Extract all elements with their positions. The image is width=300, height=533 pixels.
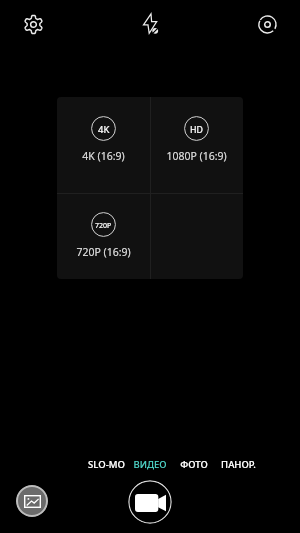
staticText: 720P xyxy=(95,221,112,231)
staticText: 1080P (16:9) xyxy=(166,149,227,163)
button[interactable]: Record xyxy=(128,480,172,524)
staticText: HD xyxy=(190,124,203,136)
button[interactable]: 720P xyxy=(57,193,150,279)
button[interactable]: SLO-MO xyxy=(84,455,128,473)
staticText: 720P (16:9) xyxy=(76,245,131,259)
staticText: ПАНОР. xyxy=(221,458,256,471)
button[interactable]: ФОТО xyxy=(172,455,216,473)
button[interactable]: ВИДЕО xyxy=(128,455,172,473)
staticText: 4K (16:9) xyxy=(82,149,125,163)
button[interactable]: Gallery xyxy=(16,485,48,517)
staticText: ВИДЕО xyxy=(133,458,167,471)
staticText: SLO-MO xyxy=(88,458,125,471)
staticText: 4K xyxy=(98,123,110,136)
button[interactable]: Switch camera xyxy=(247,4,287,44)
button[interactable]: Settings xyxy=(13,4,53,44)
button[interactable]: HD xyxy=(150,97,243,193)
staticText: ФОТО xyxy=(180,458,208,471)
button[interactable]: ПАНОР. xyxy=(216,455,260,473)
button[interactable]: Flash off xyxy=(130,4,170,44)
button[interactable]: 4K xyxy=(57,97,150,193)
